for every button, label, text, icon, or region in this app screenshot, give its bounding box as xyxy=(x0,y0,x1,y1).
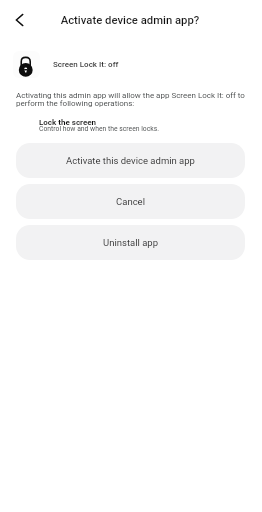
button[interactable]: Uninstall app xyxy=(16,225,245,260)
button[interactable]: Navigate back xyxy=(6,6,34,34)
staticText: Screen Lock It: off xyxy=(53,60,119,69)
staticText: Lock the screen xyxy=(39,118,97,127)
staticText: Cancel xyxy=(116,196,145,207)
button[interactable]: Cancel xyxy=(16,184,245,219)
staticText: Activate device admin app? xyxy=(0,14,261,27)
button[interactable]: Activate this device admin app xyxy=(16,143,245,178)
staticText: Activate this device admin app xyxy=(66,155,195,166)
staticText: Control how and when the screen locks. xyxy=(39,125,160,133)
staticText: Activating this admin app will allow the… xyxy=(16,91,248,108)
staticText: Uninstall app xyxy=(103,237,158,248)
